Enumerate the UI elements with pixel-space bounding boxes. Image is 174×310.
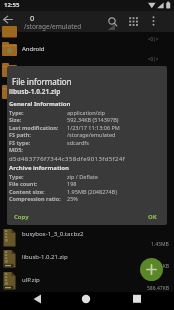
staticText: 1.95MB (2048274B): [67, 188, 117, 195]
staticText: File count:: [9, 180, 38, 187]
staticText: sdcardfs: [67, 139, 89, 146]
staticText: libusb-1.0.21.zip: [9, 87, 61, 96]
staticText: Archive information: [9, 164, 70, 172]
staticText: d5d483776f7344c358dfe9013fd5f24f: [9, 155, 126, 163]
staticText: Copy: [14, 213, 29, 221]
staticText: libusb-1.0.21.zip: [22, 253, 68, 261]
staticText: 0: [30, 13, 35, 23]
staticText: FS type:: [9, 139, 31, 146]
button[interactable]: [0, 40, 174, 62]
staticText: Content size:: [9, 188, 45, 195]
button[interactable]: [0, 268, 174, 290]
staticText: zip / Deflate: [67, 173, 98, 180]
staticText: 586.47KB: [147, 285, 169, 292]
staticText: General Information: [9, 100, 71, 108]
staticText: busybox-1_3_0.tar.bz2: [22, 230, 84, 238]
staticText: /storage/emulated: [67, 131, 116, 138]
staticText: Size:: [9, 116, 22, 123]
button[interactable]: [130, 292, 144, 306]
staticText: 198: [67, 180, 77, 187]
button[interactable]: [146, 14, 161, 29]
button[interactable]: Copy: [10, 211, 36, 223]
button[interactable]: OK: [142, 211, 162, 223]
staticText: Compression ratio:: [9, 195, 61, 202]
button[interactable]: [0, 246, 174, 268]
button[interactable]: [126, 14, 142, 30]
staticText: 1/23/17 11:13:06 PM: [67, 124, 120, 131]
staticText: Last modification:: [9, 124, 59, 131]
staticText: application/zip: [67, 109, 105, 116]
button[interactable]: [0, 12, 17, 27]
staticText: Type:: [9, 109, 24, 116]
button[interactable]: [0, 224, 174, 246]
button[interactable]: [31, 292, 45, 306]
staticText: MD5:: [9, 146, 23, 153]
staticText: 592.34KB (514397B): [67, 116, 119, 123]
staticText: 1.43MB: [151, 241, 169, 248]
staticText: OK: [148, 213, 157, 221]
button[interactable]: [105, 14, 120, 29]
button[interactable]: [140, 258, 163, 281]
staticText: /storage/emulated: [24, 22, 82, 31]
staticText: File information: [12, 76, 72, 87]
staticText: Type:: [9, 173, 24, 180]
staticText: 25%: [67, 195, 78, 202]
button[interactable]: [79, 292, 93, 306]
staticText: 12:55: [4, 1, 20, 9]
staticText: <0|>: [148, 56, 159, 62]
staticText: FS path:: [9, 131, 31, 138]
staticText: 592.34KB: [147, 263, 169, 270]
staticText: <0|>: [148, 36, 159, 42]
staticText: ulP.zip: [22, 276, 40, 284]
staticText: Android: [22, 45, 45, 53]
